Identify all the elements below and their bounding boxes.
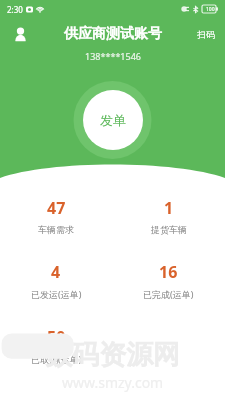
staticText: 16 xyxy=(159,261,178,283)
staticText: 50 xyxy=(47,326,66,348)
staticText: 已完成(运单) xyxy=(143,288,194,300)
staticText: 扫码 xyxy=(197,29,215,40)
staticText: 1 xyxy=(164,197,174,219)
button[interactable]: 发单 xyxy=(83,90,143,150)
button[interactable]: 扫码 xyxy=(187,24,225,45)
staticText: 提货车辆 xyxy=(151,224,187,235)
staticText: 100 xyxy=(206,6,215,13)
staticText: 2:30 xyxy=(7,4,23,15)
staticText: 供应商测试账号 xyxy=(64,25,162,43)
button[interactable]: Profile xyxy=(6,20,34,48)
button[interactable]: 50 xyxy=(0,324,112,367)
button[interactable]: 16 xyxy=(112,259,225,302)
button[interactable]: 1 xyxy=(112,195,225,237)
staticText: 4 xyxy=(51,261,61,283)
staticText: 已取消(运单) xyxy=(31,353,82,365)
button[interactable]: 4 xyxy=(0,259,112,302)
staticText: 发单 xyxy=(100,112,126,128)
staticText: 138****1546 xyxy=(85,50,141,62)
staticText: www.smzy.com xyxy=(62,373,164,392)
staticText: 车辆需求 xyxy=(38,224,74,235)
staticText: 已发运(运单) xyxy=(31,288,82,300)
button[interactable]: 47 xyxy=(0,195,112,237)
staticText: 47 xyxy=(47,197,66,219)
staticText: 数码资源网 xyxy=(45,338,180,372)
